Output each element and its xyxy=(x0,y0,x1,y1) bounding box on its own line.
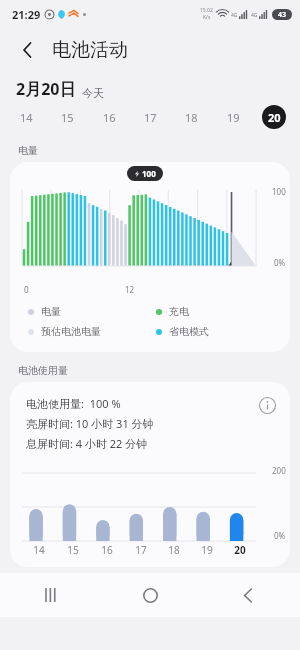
button[interactable]: Info xyxy=(256,394,278,416)
staticText: 4G xyxy=(251,12,258,19)
staticText: 20 xyxy=(268,110,281,125)
button[interactable]: 19 xyxy=(221,105,245,129)
staticText: 15.02 xyxy=(200,7,213,14)
staticText: 14 xyxy=(20,110,33,125)
staticText: 电池活动 xyxy=(52,38,128,62)
button[interactable]: Back xyxy=(14,36,42,64)
staticText: 0 xyxy=(24,284,29,295)
staticText: 电池使用量: 100 % xyxy=(26,396,121,411)
staticText: 0% xyxy=(274,257,286,268)
staticText: 18 xyxy=(168,543,180,557)
button[interactable]: Back xyxy=(230,577,266,613)
staticText: 100 xyxy=(142,168,156,179)
button[interactable]: Recents xyxy=(34,577,70,613)
button[interactable]: 20 xyxy=(262,105,286,129)
staticText: 充电 xyxy=(169,305,189,318)
staticText: 电量 xyxy=(41,305,61,318)
button[interactable]: 15 xyxy=(55,105,79,129)
staticText: 20 xyxy=(234,543,246,557)
staticText: 100 xyxy=(272,186,286,197)
button[interactable]: 电池使用量: 100 % xyxy=(10,382,290,567)
button[interactable]: 16 xyxy=(97,105,121,129)
staticText: 0% xyxy=(274,530,286,541)
button[interactable]: 17 xyxy=(138,105,162,129)
staticText: 电量 xyxy=(18,144,38,157)
button[interactable]: 18 xyxy=(179,105,203,129)
staticText: 19 xyxy=(227,110,240,125)
staticText: 16 xyxy=(103,110,116,125)
staticText: 亮屏时间: 10 小时 31 分钟 xyxy=(26,416,154,431)
staticText: 19 xyxy=(201,543,213,557)
staticText: 今天 xyxy=(82,86,104,100)
staticText: 4G xyxy=(231,12,238,19)
staticText: 15 xyxy=(61,110,74,125)
staticText: 电池使用量 xyxy=(18,364,68,377)
staticText: 12 xyxy=(125,284,135,295)
staticText: 17 xyxy=(144,110,157,125)
staticText: 15 xyxy=(67,543,79,557)
staticText: 省电模式 xyxy=(169,325,209,338)
button[interactable]: Home xyxy=(132,577,168,613)
staticText: 43 xyxy=(278,10,287,20)
staticText: 息屏时间: 4 小时 22 分钟 xyxy=(26,436,148,451)
button[interactable]: 100 xyxy=(10,162,290,352)
staticText: 14 xyxy=(33,543,45,557)
staticText: 18 xyxy=(185,110,198,125)
button[interactable]: 14 xyxy=(14,105,38,129)
staticText: 200 xyxy=(272,465,286,476)
staticText: 2月20日 xyxy=(16,78,76,100)
staticText: 17 xyxy=(135,543,147,557)
staticText: 预估电池电量 xyxy=(41,325,101,338)
staticText: 21:29 xyxy=(12,7,41,22)
staticText: K/s xyxy=(203,14,211,21)
staticText: 16 xyxy=(101,543,113,557)
